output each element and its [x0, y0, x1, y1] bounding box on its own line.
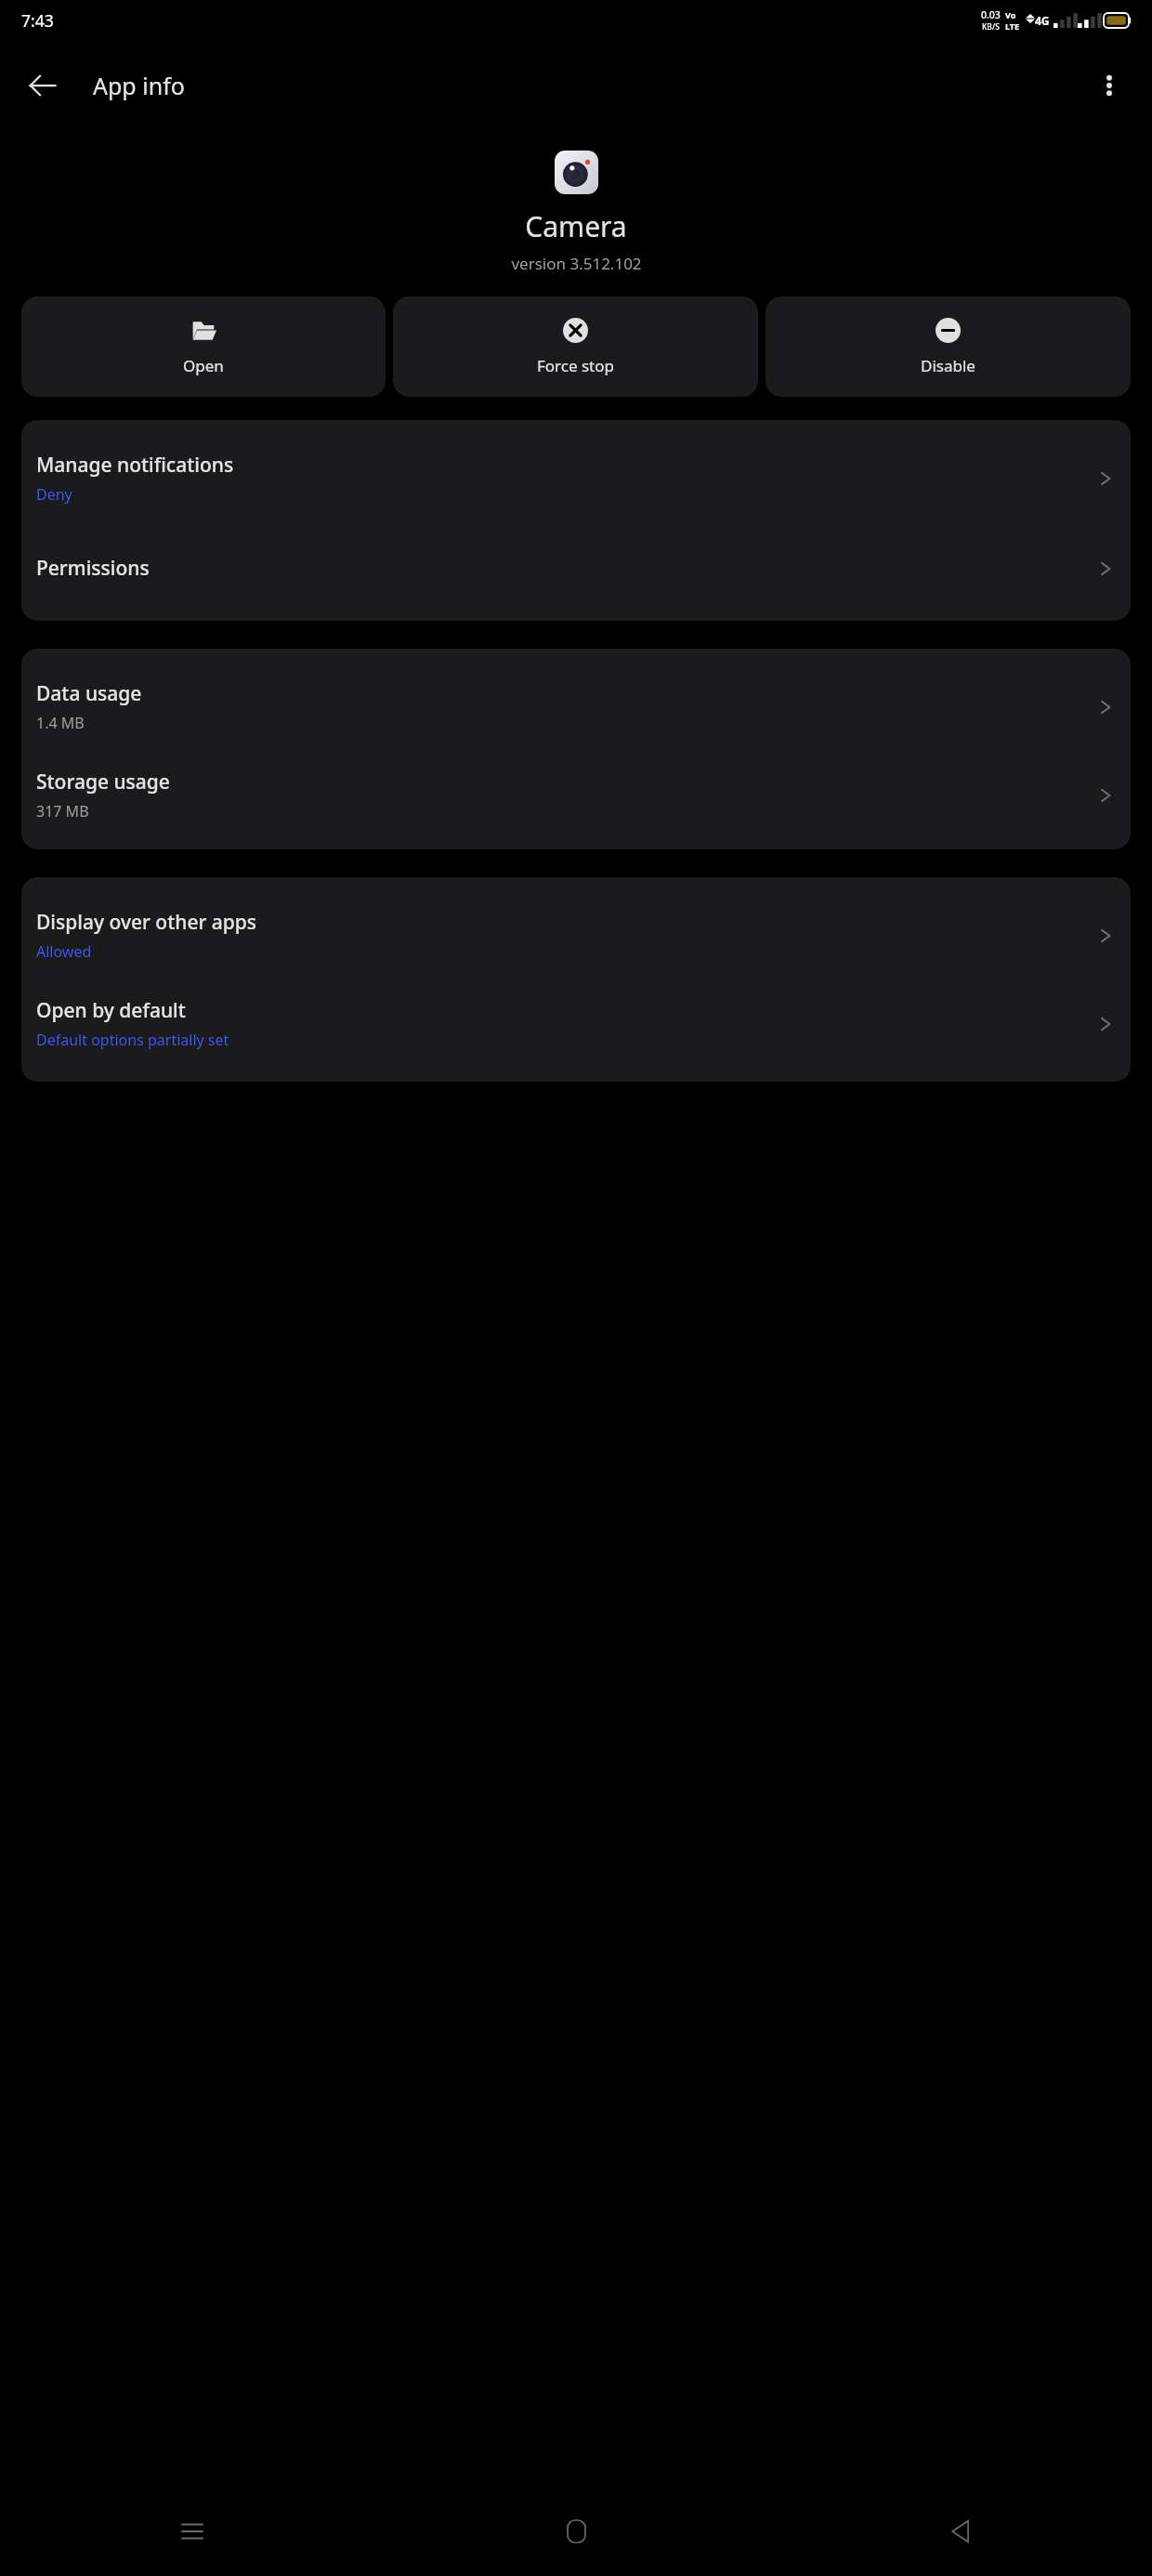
button[interactable]: Open by default — [21, 986, 1131, 1082]
staticText: 317 MB — [36, 801, 89, 821]
staticText: LTE — [1005, 20, 1020, 32]
button[interactable]: More options — [1080, 56, 1139, 115]
staticText: Data usage — [36, 680, 142, 707]
button[interactable]: Display over other apps — [21, 877, 1131, 986]
button[interactable]: Manage notifications — [21, 420, 1131, 532]
staticText: Permissions — [36, 555, 150, 582]
staticText: Deny — [36, 484, 72, 505]
staticText: 7:43 — [21, 9, 54, 32]
button[interactable]: Recent apps — [0, 2487, 385, 2576]
button[interactable]: Back — [13, 56, 72, 115]
staticText: Manage notifications — [36, 452, 234, 479]
button[interactable]: Data usage — [21, 649, 1131, 757]
staticText: version 3.512.102 — [511, 253, 642, 274]
staticText: Open — [183, 355, 224, 376]
staticText: 4G — [1035, 13, 1050, 28]
staticText: App info — [93, 70, 185, 101]
staticText: Disable — [921, 355, 975, 376]
button[interactable]: Open — [21, 296, 386, 397]
staticText: KB/S — [982, 21, 1000, 33]
staticText: Storage usage — [36, 769, 170, 795]
staticText: Display over other apps — [36, 909, 257, 936]
staticText: Vo — [1005, 9, 1016, 20]
button[interactable]: Storage usage — [21, 757, 1131, 849]
staticText: Camera — [525, 207, 627, 245]
staticText: Force stop — [537, 355, 614, 376]
staticText: Open by default — [36, 997, 186, 1024]
staticText: 0.03 — [981, 8, 1001, 21]
button[interactable]: Permissions — [21, 532, 1131, 621]
staticText: Default options partially set — [36, 1030, 229, 1050]
button[interactable]: Force stop — [393, 296, 758, 397]
button[interactable]: Disable — [766, 296, 1131, 397]
staticText: 1.4 MB — [36, 713, 85, 733]
button[interactable]: Back — [768, 2487, 1152, 2576]
staticText: Allowed — [36, 941, 92, 962]
button[interactable]: Home — [385, 2487, 768, 2576]
